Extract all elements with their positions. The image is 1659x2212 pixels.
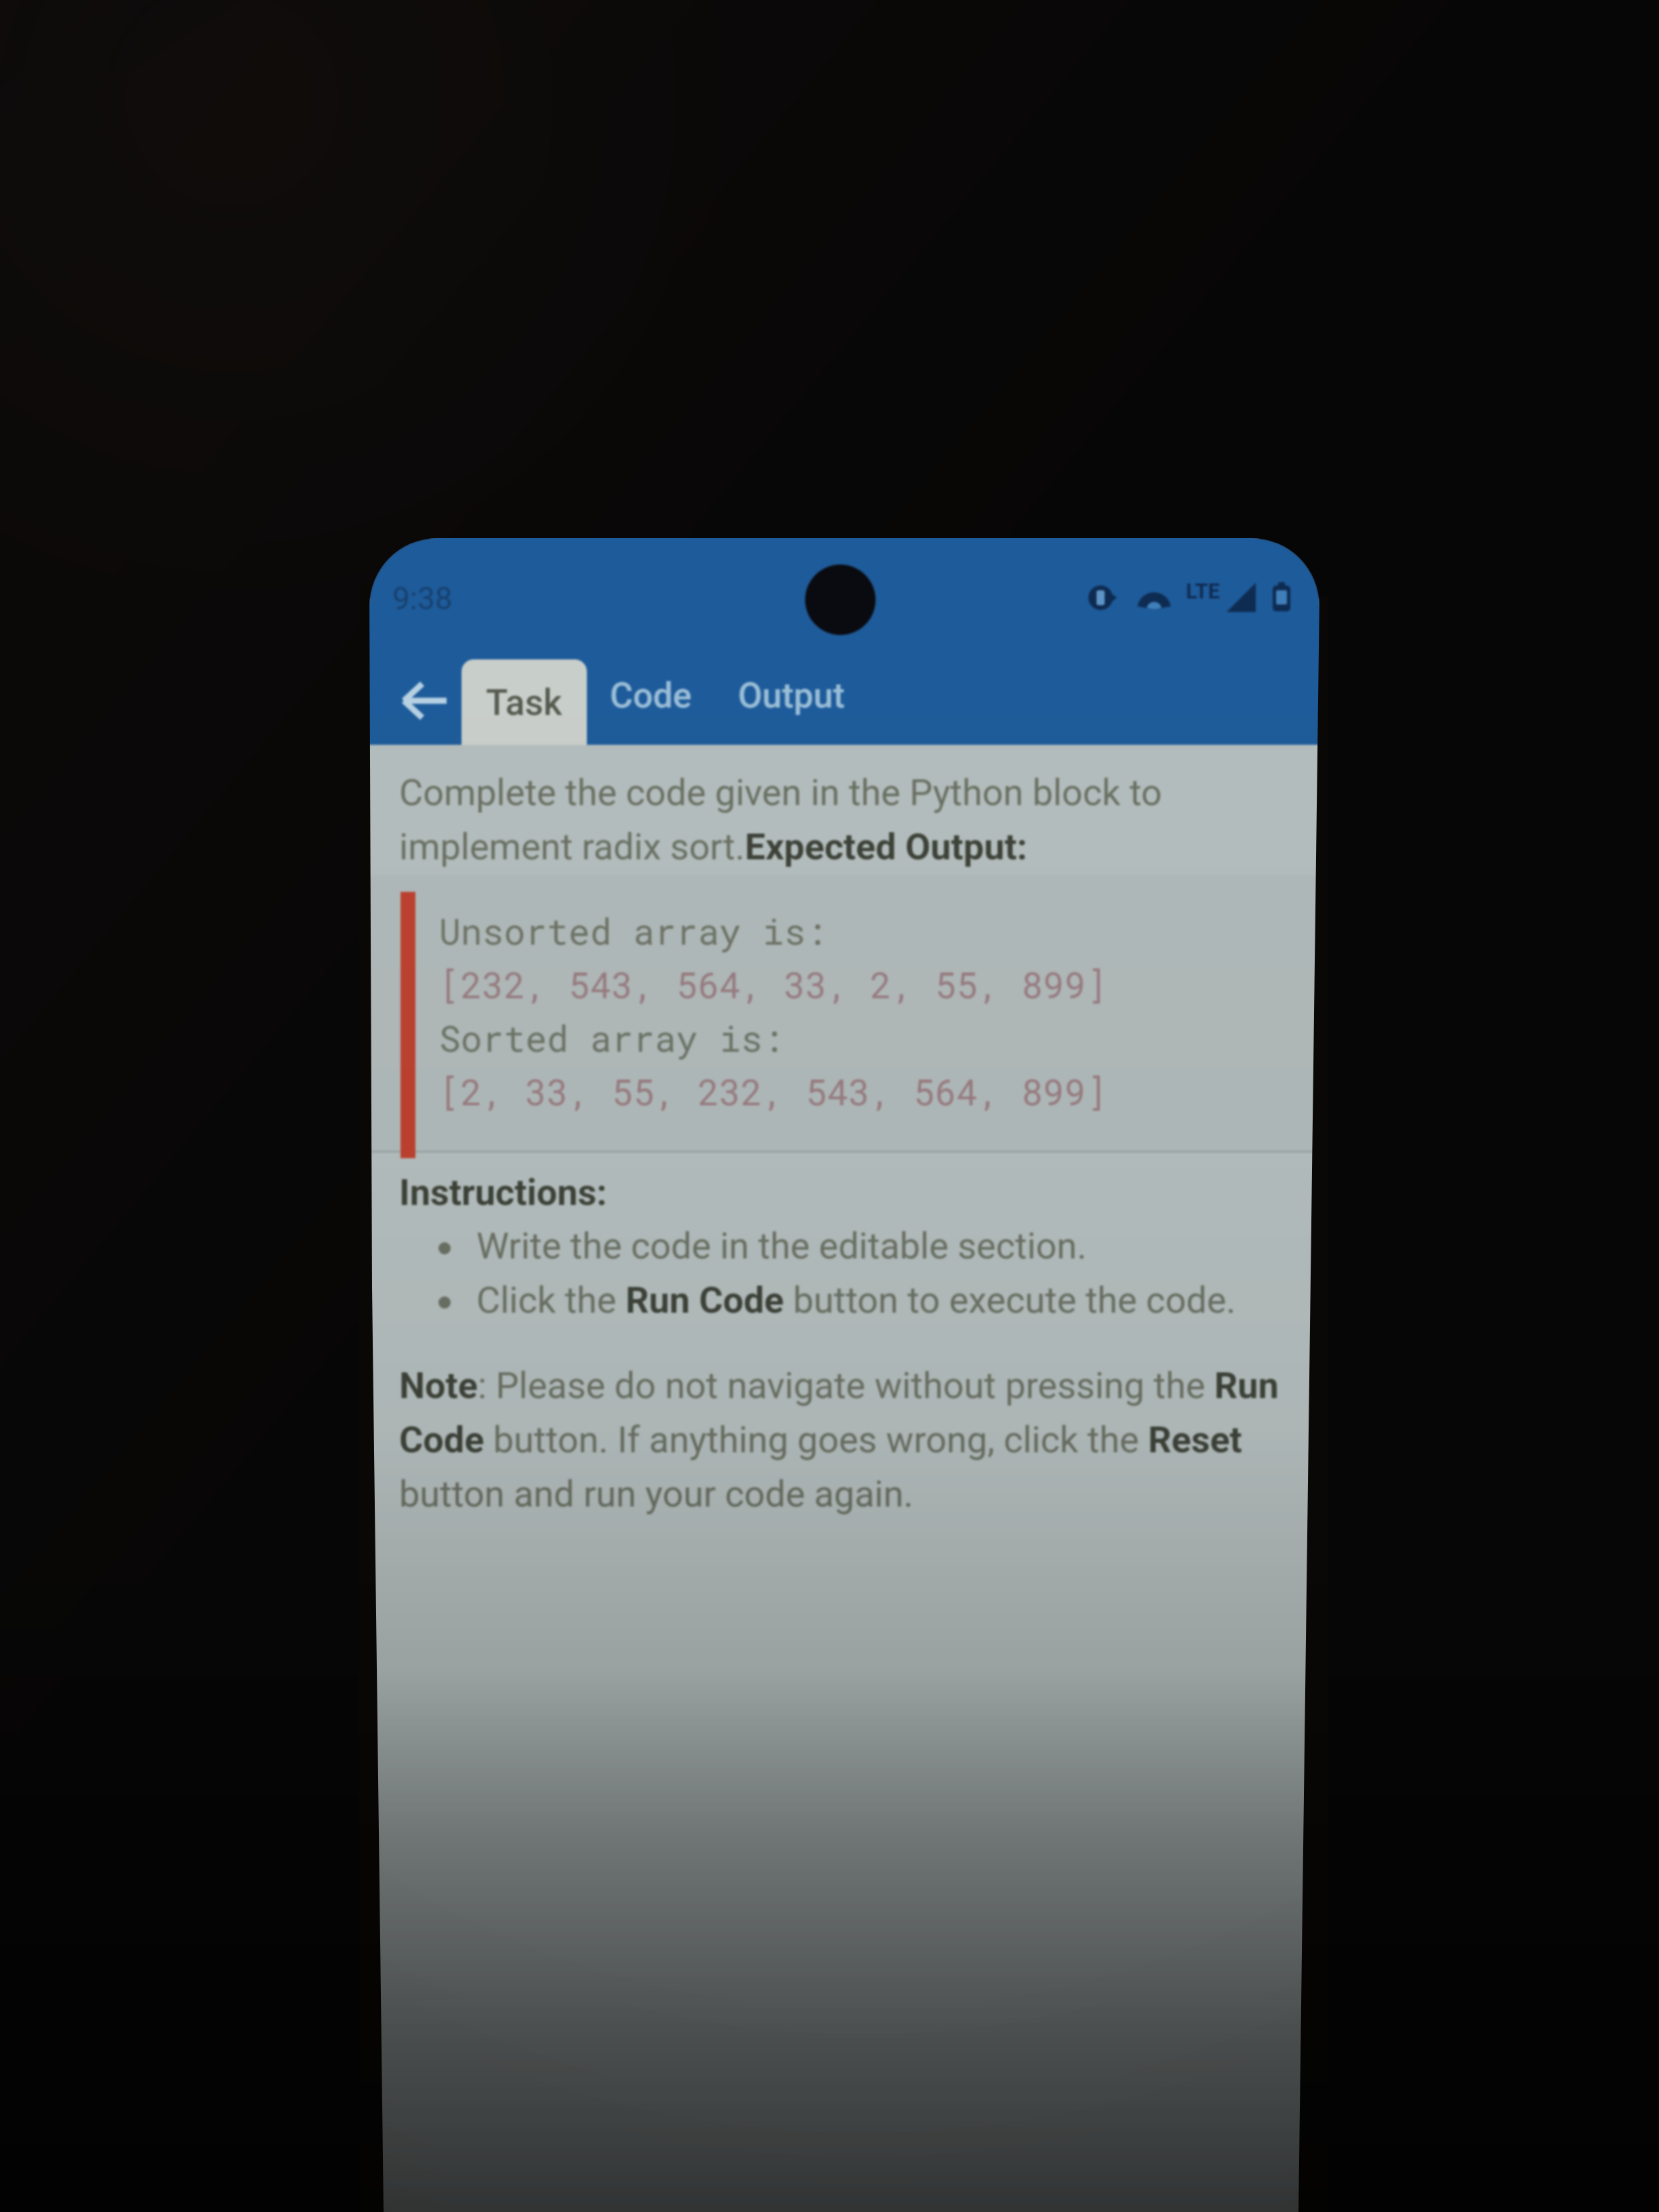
staticText: Click the Run Code button to execute the… [476,1270,1236,1324]
staticText: Note: Please do not navigate without pre… [399,1355,1290,1518]
staticText: Output [738,675,845,716]
staticText: LTE [1186,579,1220,603]
button[interactable]: Output [717,646,866,745]
staticText: Code [610,675,692,716]
staticText: Instructions: [399,1162,607,1216]
button[interactable]: Back [369,646,462,745]
button[interactable]: Code [590,646,712,745]
staticText: Write the code in the editable section. [476,1216,1087,1270]
staticText: 9:38 [392,580,453,617]
button[interactable]: Task [462,659,587,745]
staticText: Task [486,682,562,724]
staticText: Complete the code given in the Python bl… [399,762,1290,871]
staticText: Unsorted array is: [232, 543, 564, 33, 2… [439,902,1107,1116]
